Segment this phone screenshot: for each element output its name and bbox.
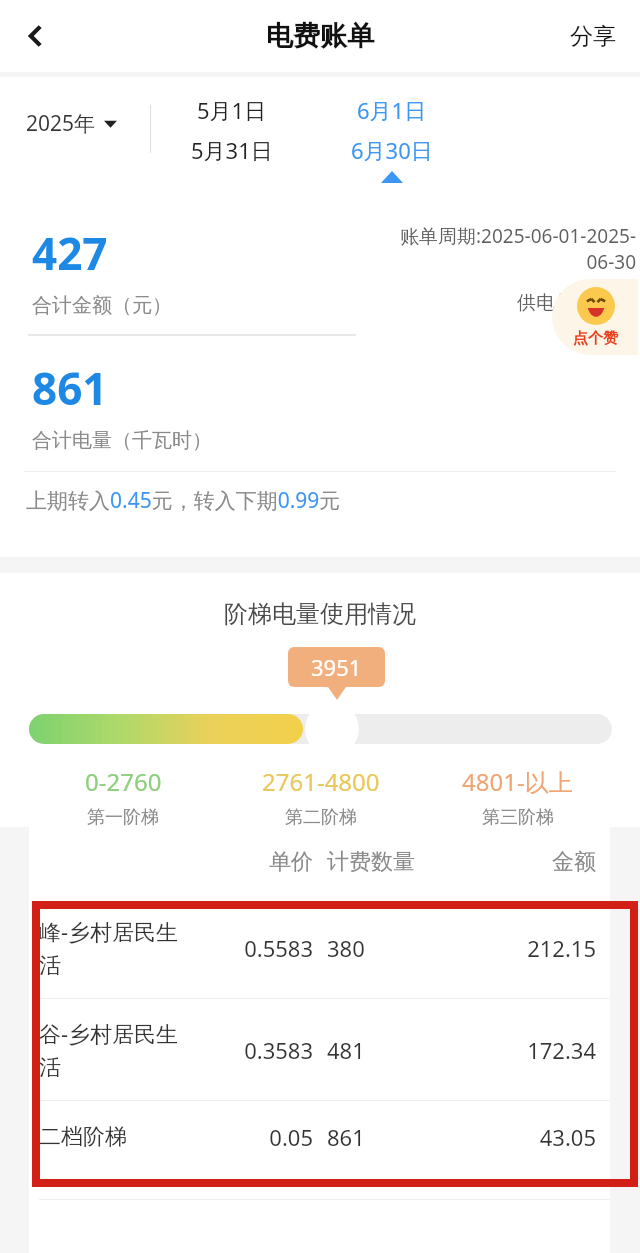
staticText: 861 [327, 1122, 481, 1152]
staticText: 0.5583 [193, 933, 313, 963]
button[interactable]: 分享 [564, 14, 622, 59]
staticText: 06-30 [586, 249, 636, 275]
staticText: 172.34 [481, 1035, 596, 1065]
staticText: 212.15 [481, 933, 596, 963]
staticText: 5月1日 [197, 95, 267, 125]
staticText: 分享 [570, 22, 616, 51]
button[interactable]: 2025年 [26, 109, 150, 138]
staticText: 合计金额（元） [32, 293, 172, 318]
staticText: 4801-以上 [462, 765, 573, 798]
staticText: 电费账单 [266, 19, 374, 53]
staticText: 0.05 [193, 1122, 313, 1152]
staticText: 峰-乡村居民生活 [39, 916, 181, 980]
staticText: 427 [32, 223, 108, 283]
staticText: 2025年 [26, 109, 96, 138]
staticText: 861 [32, 358, 108, 418]
staticText: 账单周期:2025-06-01-2025- [400, 223, 636, 249]
button[interactable]: 二档阶梯 [29, 1101, 610, 1173]
staticText: 0-2760 [85, 765, 162, 798]
staticText: 6月30日 [351, 135, 433, 165]
staticText: 谷-乡村居民生活 [39, 1018, 181, 1082]
staticText: 阶梯电量使用情况 [224, 599, 416, 629]
staticText: 6月1日 [357, 95, 427, 125]
staticText: 点个赞 [573, 329, 618, 348]
staticText: 合计电量（千瓦时） [32, 428, 212, 453]
staticText: 第二阶梯 [285, 806, 357, 827]
staticText: 二档阶梯 [39, 1123, 181, 1151]
button[interactable]: 峰-乡村居民生活 [29, 897, 610, 998]
staticText: 供电单位:千灯 [516, 289, 636, 315]
staticText: 单价 [193, 848, 313, 876]
staticText: 380 [327, 933, 481, 963]
button[interactable]: 谷-乡村居民生活 [29, 999, 610, 1100]
staticText: 3951 [311, 652, 362, 682]
staticText: 43.05 [481, 1122, 596, 1152]
staticText: 0.3583 [193, 1035, 313, 1065]
staticText: 上期转入0.45元，转入下期0.99元 [26, 486, 341, 515]
staticText: 金额 [481, 848, 596, 876]
button[interactable]: 点个赞 [552, 279, 638, 355]
button[interactable]: 5月1日 [151, 95, 312, 165]
staticText: 5月31日 [191, 135, 273, 165]
staticText: 第三阶梯 [482, 806, 554, 827]
staticText: 计费数量 [327, 848, 481, 876]
button[interactable]: 6月1日 [312, 95, 472, 183]
staticText: 2761-4800 [262, 765, 380, 798]
button[interactable]: Back [8, 8, 64, 64]
staticText: 481 [327, 1035, 481, 1065]
staticText: 第一阶梯 [87, 806, 159, 827]
